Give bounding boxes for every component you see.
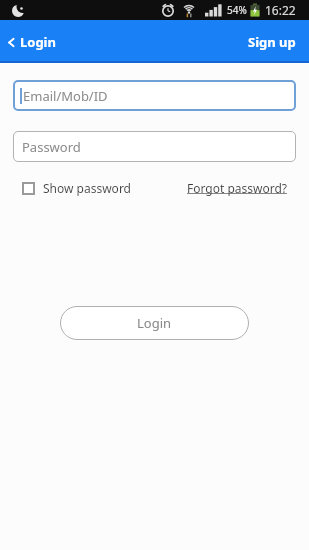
staticText: 54% [227,3,247,17]
staticText: Login [137,314,172,332]
button[interactable]: Password [13,131,296,162]
staticText: Sign up [248,33,296,51]
staticText: 16:22 [265,2,296,18]
button[interactable]: Email/Mob/ID [13,80,296,111]
button[interactable]: Login [60,306,249,340]
staticText: Forgot password? [187,180,288,196]
button[interactable]: Forgot password? [187,180,296,196]
button[interactable]: Login [0,33,56,51]
staticText: Email/Mob/ID [23,87,108,105]
button[interactable]: Show password [13,180,131,196]
staticText: Show password [43,180,131,196]
button[interactable]: Sign up [248,33,309,51]
staticText: Login [20,33,56,51]
staticText: Password [22,138,81,156]
